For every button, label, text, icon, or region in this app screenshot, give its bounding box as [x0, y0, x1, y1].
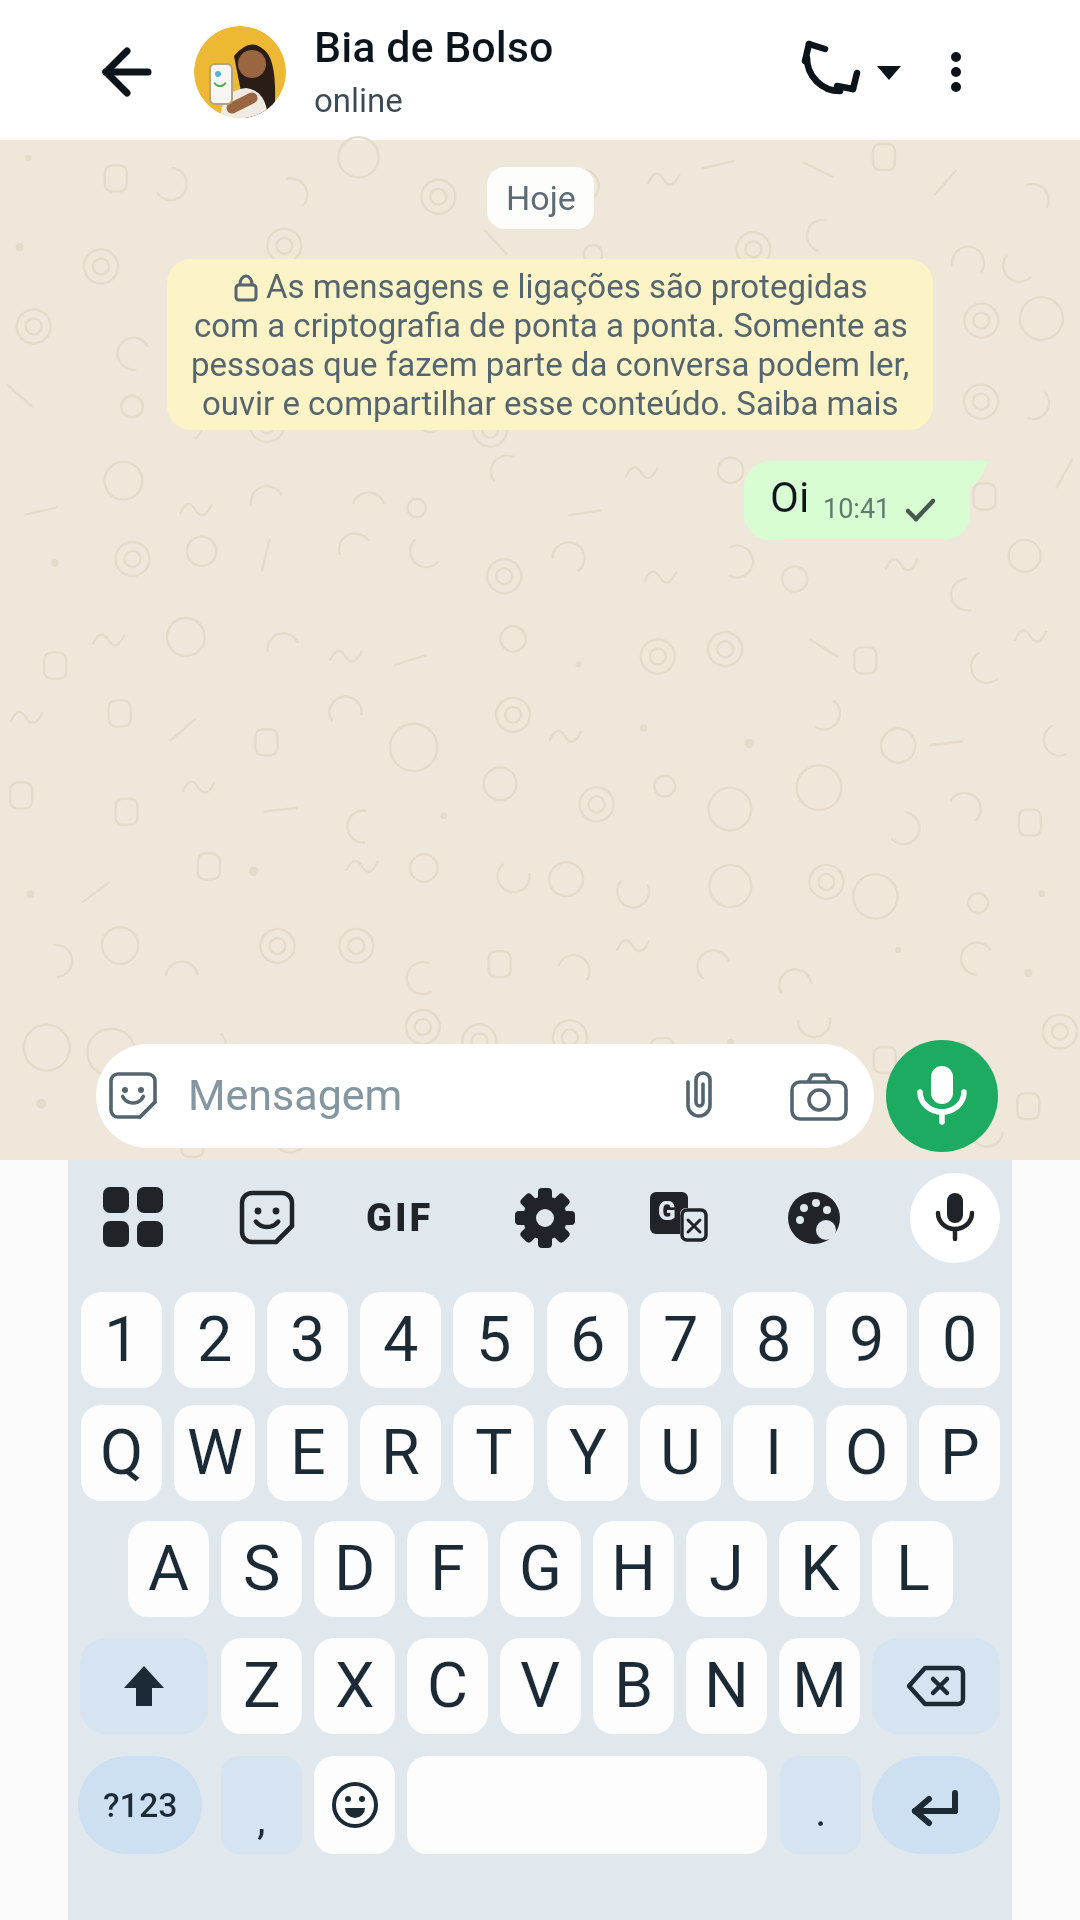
button[interactable]: 1	[81, 1292, 162, 1388]
button[interactable]: GIF	[348, 1192, 452, 1244]
button[interactable]	[80, 1638, 208, 1734]
button[interactable]	[103, 1187, 165, 1249]
staticText: 1	[104, 1303, 140, 1377]
button[interactable]: Oi	[744, 461, 970, 540]
button[interactable]: ,	[221, 1756, 302, 1854]
button[interactable]: S	[221, 1521, 302, 1617]
button[interactable]: G	[650, 1190, 708, 1246]
staticText: Z	[243, 1649, 281, 1723]
staticText: L	[896, 1532, 930, 1606]
button[interactable]	[314, 1756, 395, 1854]
button[interactable]: ?123	[78, 1756, 202, 1854]
staticText: U	[660, 1416, 701, 1490]
button[interactable]: D	[314, 1521, 395, 1617]
staticText: As mensagens e ligações são protegidas	[266, 267, 868, 306]
staticText: 0	[942, 1303, 978, 1377]
staticText: 4	[383, 1303, 419, 1377]
staticText: ouvir e compartilhar esse conteúdo. Saib…	[202, 384, 899, 423]
button[interactable]: 2	[174, 1292, 255, 1388]
button[interactable]	[886, 1040, 998, 1152]
button[interactable]	[910, 1173, 1000, 1263]
staticText: V	[520, 1649, 561, 1723]
button[interactable]: 5	[453, 1292, 534, 1388]
button[interactable]	[514, 1187, 576, 1249]
button[interactable]: 8	[733, 1292, 814, 1388]
staticText: 6	[570, 1303, 606, 1377]
button[interactable]: 0	[919, 1292, 1000, 1388]
staticText: R	[381, 1416, 420, 1490]
staticText: ,	[257, 1793, 266, 1845]
button[interactable]: E	[267, 1405, 348, 1501]
button[interactable]: W	[174, 1405, 255, 1501]
button[interactable]	[922, 24, 992, 120]
staticText: C	[427, 1649, 469, 1723]
staticText: T	[475, 1416, 513, 1490]
staticText: A	[148, 1532, 190, 1606]
button[interactable]: Hoje	[487, 167, 594, 229]
staticText: Mensagem	[188, 1070, 403, 1120]
button[interactable]: I	[733, 1405, 814, 1501]
button[interactable]	[780, 24, 920, 120]
button[interactable]: T	[453, 1405, 534, 1501]
staticText: D	[334, 1532, 376, 1606]
staticText: O	[845, 1416, 889, 1490]
staticText: Bia de Bolso	[314, 22, 554, 72]
button[interactable]: N	[686, 1638, 767, 1734]
button[interactable]: M	[779, 1638, 860, 1734]
button[interactable]: O	[826, 1405, 907, 1501]
staticText: 3	[290, 1303, 326, 1377]
button[interactable]	[872, 1638, 1000, 1734]
staticText: H	[611, 1532, 656, 1606]
staticText: F	[430, 1532, 465, 1606]
button[interactable]: 3	[267, 1292, 348, 1388]
button[interactable]: As mensagens e ligações são protegidas	[167, 259, 933, 430]
button[interactable]: H	[593, 1521, 674, 1617]
button[interactable]	[872, 1756, 1000, 1854]
staticText: B	[614, 1649, 654, 1723]
staticText: pessoas que fazem parte da conversa pode…	[191, 345, 910, 384]
button[interactable]: P	[919, 1405, 1000, 1501]
staticText: Hoje	[506, 178, 576, 218]
staticText: 10:41	[823, 493, 891, 525]
staticText: Y	[569, 1416, 607, 1490]
button[interactable]: 7	[640, 1292, 721, 1388]
button[interactable]: .	[780, 1756, 861, 1854]
button[interactable]: V	[500, 1638, 581, 1734]
staticText: G	[519, 1532, 562, 1606]
staticText: J	[709, 1532, 744, 1606]
staticText: X	[335, 1649, 375, 1723]
button[interactable]: U	[640, 1405, 721, 1501]
button[interactable]: L	[872, 1521, 953, 1617]
button[interactable]: K	[779, 1521, 860, 1617]
button[interactable]	[194, 26, 286, 118]
staticText: N	[704, 1649, 749, 1723]
staticText: 9	[849, 1303, 885, 1377]
button[interactable]: 4	[360, 1292, 441, 1388]
staticText: M	[792, 1649, 848, 1723]
button[interactable]	[86, 32, 170, 112]
staticText: W	[187, 1416, 243, 1490]
staticText: online	[314, 81, 403, 120]
button[interactable]: 9	[826, 1292, 907, 1388]
button[interactable]: C	[407, 1638, 488, 1734]
staticText: I	[765, 1416, 783, 1490]
button[interactable]: G	[500, 1521, 581, 1617]
staticText: 8	[756, 1303, 792, 1377]
button[interactable]	[240, 1191, 294, 1245]
staticText: E	[290, 1416, 326, 1490]
button[interactable]: Z	[221, 1638, 302, 1734]
button[interactable]: 6	[547, 1292, 628, 1388]
button[interactable]: B	[593, 1638, 674, 1734]
button[interactable]: X	[314, 1638, 395, 1734]
button[interactable]: A	[128, 1521, 209, 1617]
button[interactable]: Mensagem	[96, 1044, 874, 1148]
button[interactable]: Y	[547, 1405, 628, 1501]
staticText: S	[243, 1532, 281, 1606]
button[interactable]: Q	[81, 1405, 162, 1501]
button[interactable]: F	[407, 1521, 488, 1617]
button[interactable]	[786, 1190, 844, 1246]
button[interactable]: J	[686, 1521, 767, 1617]
button[interactable]: R	[360, 1405, 441, 1501]
staticText: 5	[476, 1303, 512, 1377]
